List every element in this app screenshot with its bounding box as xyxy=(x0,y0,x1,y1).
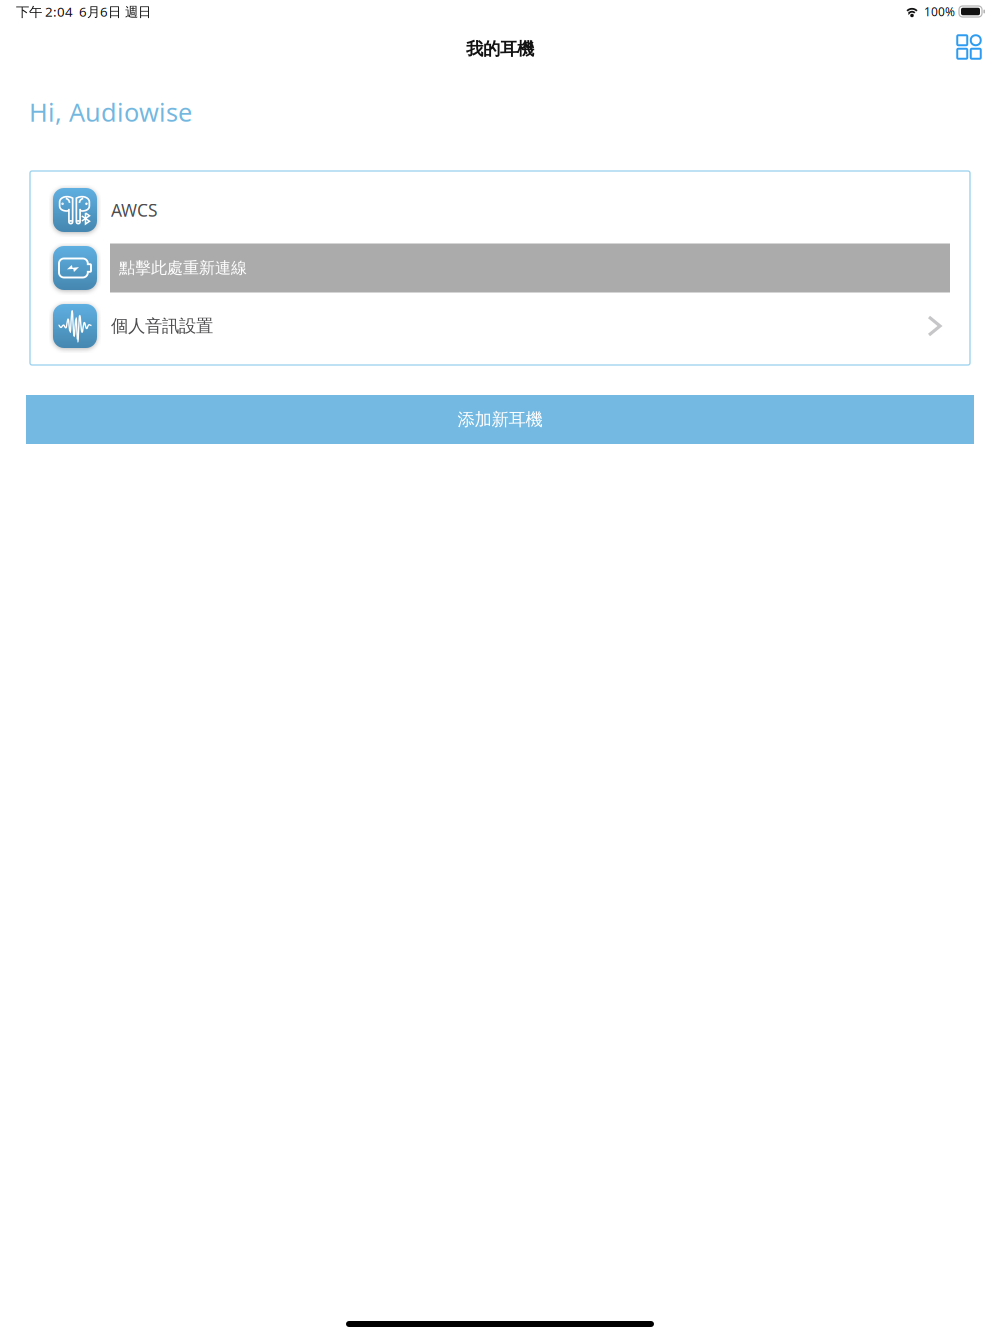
button[interactable]: Grid view xyxy=(950,28,988,66)
button[interactable]: 添加新耳機 xyxy=(26,395,974,444)
button[interactable]: 點擊此處重新連線 xyxy=(110,243,950,292)
staticText: 100% xyxy=(924,3,955,19)
staticText: 添加新耳機 xyxy=(457,409,542,430)
staticText: 個人音訊設置 xyxy=(111,315,213,337)
staticText: 點擊此處重新連線 xyxy=(119,258,247,278)
staticText: Hi, Audiowise xyxy=(29,95,192,129)
staticText: 我的耳機 xyxy=(466,38,534,60)
button[interactable]: 個人音訊設置 xyxy=(30,297,970,355)
staticText: AWCS xyxy=(111,198,158,221)
button[interactable]: AWCS xyxy=(30,181,970,239)
staticText: 下午 2:04 6月6日 週日 xyxy=(16,3,151,20)
